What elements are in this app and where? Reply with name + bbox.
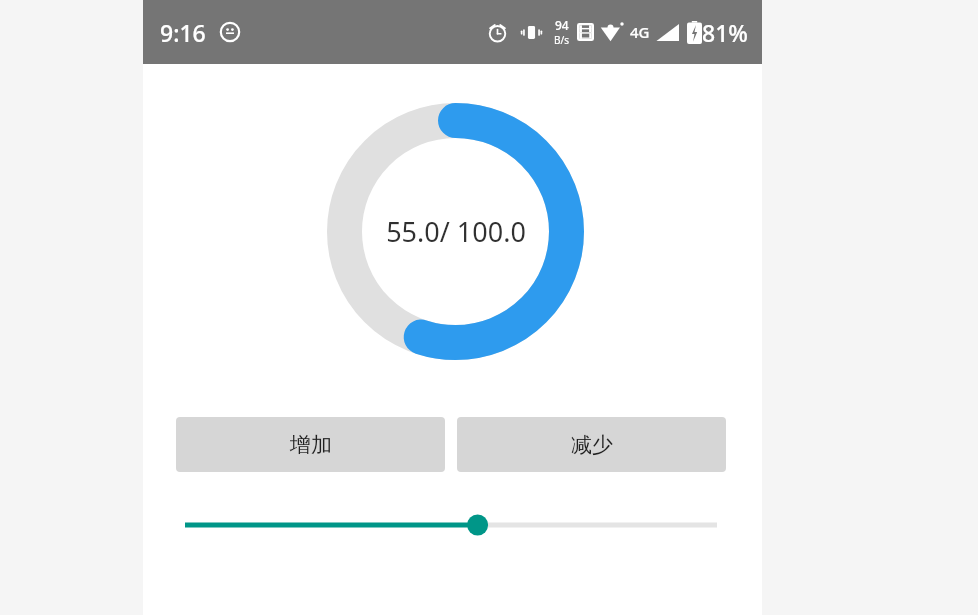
button[interactable]: 减少 <box>457 417 726 472</box>
staticText: B/s <box>554 33 570 47</box>
other: Notification <box>220 22 240 42</box>
other: Battery charging <box>687 21 702 44</box>
staticText: 81% <box>702 17 748 48</box>
other: HD calling <box>577 20 594 44</box>
other: Vibrate mode <box>521 22 542 43</box>
other: Wi-Fi <box>600 21 625 43</box>
staticText: 55.0/ 100.0 <box>386 213 526 250</box>
staticText: 增加 <box>290 432 332 458</box>
staticText: 4G <box>630 22 650 42</box>
other: Network speed <box>554 17 570 47</box>
staticText: 减少 <box>571 432 613 458</box>
staticText: 9:16 <box>160 17 206 48</box>
other: Alarm set <box>487 22 508 43</box>
staticText: 94 <box>555 17 569 33</box>
other: Signal strength <box>656 23 679 42</box>
button[interactable] <box>185 501 717 549</box>
button[interactable]: 增加 <box>176 417 445 472</box>
